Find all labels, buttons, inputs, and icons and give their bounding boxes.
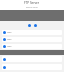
button[interactable]	[2, 56, 62, 62]
button[interactable]	[28, 24, 31, 27]
button[interactable]: Item	[2, 44, 62, 49]
button[interactable]: Item	[2, 37, 62, 42]
staticText: device setup	[26, 6, 38, 9]
staticText: Item	[7, 45, 12, 48]
staticText: Item	[7, 38, 12, 41]
button[interactable]: Item	[2, 30, 62, 35]
button[interactable]	[34, 24, 37, 27]
button[interactable]	[2, 64, 62, 70]
staticText: FTP Server	[24, 1, 40, 5]
staticText: Item	[7, 31, 12, 34]
